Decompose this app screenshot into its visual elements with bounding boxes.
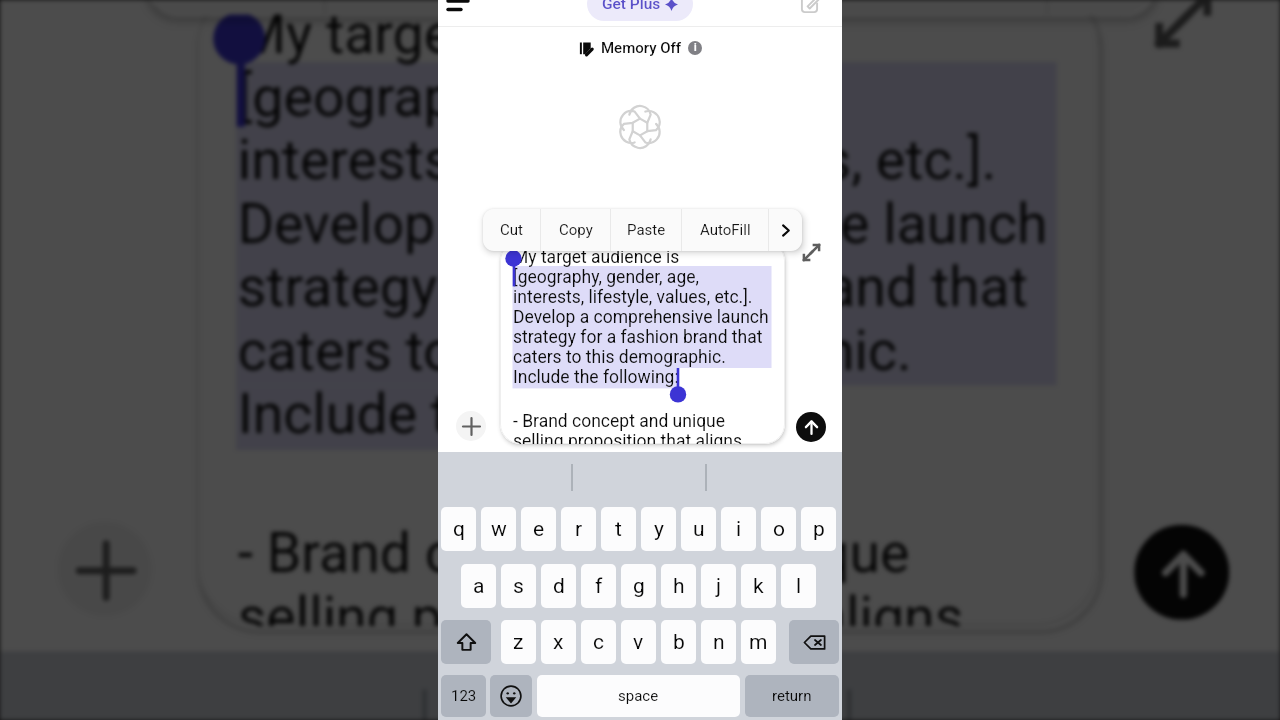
- button[interactable]: c: [581, 620, 616, 664]
- button[interactable]: o: [761, 507, 796, 551]
- button[interactable]: a: [461, 564, 496, 608]
- staticText: r: [575, 517, 583, 542]
- button[interactable]: d: [541, 564, 576, 608]
- button[interactable]: Copy: [326, 0, 545, 15]
- button[interactable]: y: [641, 507, 676, 551]
- staticText: g: [633, 574, 645, 599]
- staticText: w: [491, 517, 507, 542]
- staticText: 123: [451, 687, 477, 705]
- staticText: Copy: [559, 221, 593, 239]
- staticText: My target audience is [geography, gender…: [238, 2, 1049, 445]
- staticText: h: [673, 574, 685, 599]
- button[interactable]: Add attachment: [456, 411, 486, 441]
- staticText: Get Plus: [602, 0, 661, 13]
- button[interactable]: f: [581, 564, 616, 608]
- button[interactable]: Get Plus: [587, 0, 693, 21]
- staticText: u: [693, 517, 705, 542]
- staticText: Paste: [627, 221, 666, 239]
- staticText: AutoFill: [700, 221, 751, 239]
- staticText: Cut: [500, 221, 523, 239]
- button[interactable]: l: [781, 564, 816, 608]
- button[interactable]: u: [681, 507, 716, 551]
- button[interactable]: e: [521, 507, 556, 551]
- button[interactable]: New chat: [793, 0, 825, 20]
- staticText: i: [694, 42, 697, 54]
- staticText: f: [595, 574, 603, 599]
- staticText: k: [753, 574, 764, 599]
- button[interactable]: AutoFill: [682, 209, 768, 251]
- staticText: n: [713, 630, 725, 655]
- button[interactable]: g: [621, 564, 656, 608]
- button[interactable]: Backspace: [789, 620, 839, 664]
- staticText: s: [513, 574, 524, 599]
- staticText: My target audience is [geography, gender…: [513, 247, 769, 387]
- button[interactable]: Send message: [796, 412, 826, 442]
- button[interactable]: space: [537, 675, 740, 717]
- staticText: e: [533, 517, 545, 542]
- button[interactable]: v: [621, 620, 656, 664]
- staticText: y: [654, 517, 664, 542]
- staticText: Memory Off: [601, 39, 682, 57]
- button[interactable]: Paste: [611, 209, 681, 251]
- button[interactable]: Expand composer: [802, 243, 821, 262]
- button[interactable]: h: [661, 564, 696, 608]
- staticText: v: [633, 630, 644, 655]
- staticText: p: [813, 517, 825, 542]
- staticText: m: [749, 630, 768, 655]
- button[interactable]: z: [501, 620, 536, 664]
- button[interactable]: AutoFill: [773, 0, 1045, 15]
- button[interactable]: Emoji: [490, 675, 532, 717]
- button[interactable]: n: [701, 620, 736, 664]
- button[interactable]: Expand composer: [1153, 0, 1213, 49]
- button[interactable]: x: [541, 620, 576, 664]
- staticText: l: [796, 574, 802, 599]
- button[interactable]: More options: [1049, 0, 1153, 15]
- staticText: - Brand concept and unique selling propo…: [513, 411, 743, 444]
- button[interactable]: w: [481, 507, 516, 551]
- staticText: j: [716, 574, 722, 599]
- staticText: t: [615, 517, 622, 542]
- button[interactable]: m: [741, 620, 776, 664]
- staticText: a: [473, 574, 485, 599]
- staticText: i: [736, 517, 742, 542]
- staticText: c: [593, 630, 604, 655]
- button[interactable]: i: [721, 507, 756, 551]
- button[interactable]: return: [745, 675, 839, 717]
- button[interactable]: Add attachment: [57, 522, 152, 617]
- button[interactable]: k: [741, 564, 776, 608]
- button[interactable]: q: [441, 507, 476, 551]
- button[interactable]: Open menu: [441, 0, 475, 20]
- staticText: o: [773, 517, 785, 542]
- button[interactable]: p: [801, 507, 836, 551]
- button[interactable]: Copy: [541, 209, 610, 251]
- staticText: x: [553, 630, 564, 655]
- button[interactable]: Shift: [441, 620, 491, 664]
- button[interactable]: Memory Off: [438, 39, 842, 57]
- button[interactable]: j: [701, 564, 736, 608]
- button[interactable]: Cut: [143, 0, 323, 15]
- button[interactable]: t: [601, 507, 636, 551]
- button[interactable]: 123: [441, 675, 486, 717]
- button[interactable]: b: [661, 620, 696, 664]
- staticText: b: [673, 630, 685, 655]
- staticText: z: [513, 630, 524, 655]
- button[interactable]: Paste: [548, 0, 770, 15]
- staticText: d: [553, 574, 565, 599]
- button[interactable]: Cut: [483, 209, 540, 251]
- button[interactable]: r: [561, 507, 596, 551]
- staticText: q: [453, 517, 465, 542]
- button[interactable]: Send message: [1134, 525, 1229, 620]
- staticText: - Brand concept and unique selling propo…: [238, 522, 966, 626]
- button[interactable]: s: [501, 564, 536, 608]
- button[interactable]: More options: [769, 209, 802, 251]
- staticText: return: [772, 687, 812, 705]
- staticText: space: [618, 687, 659, 705]
